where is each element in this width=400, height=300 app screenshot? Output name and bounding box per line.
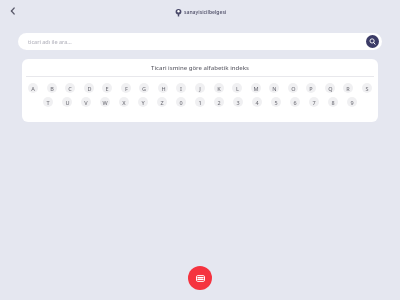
button[interactable]: A (28, 83, 38, 93)
staticText: Y (141, 99, 145, 106)
staticText: C (68, 85, 72, 92)
staticText: 2 (217, 99, 221, 106)
staticText: B (50, 85, 54, 92)
button[interactable]: 4 (252, 97, 262, 107)
button[interactable]: H (158, 83, 168, 93)
staticText: 1 (198, 99, 202, 106)
staticText: E (105, 85, 109, 92)
button[interactable]: D (84, 83, 94, 93)
staticText: M (253, 85, 259, 92)
button[interactable]: C (65, 83, 75, 93)
staticText: S (365, 85, 369, 92)
button[interactable]: 3 (233, 97, 243, 107)
button[interactable]: X (119, 97, 129, 107)
staticText: ticari adı ile ara... (28, 38, 72, 45)
button[interactable]: 0 (176, 97, 186, 107)
staticText: R (346, 85, 350, 92)
staticText: X (122, 99, 126, 106)
button[interactable]: B (47, 83, 57, 93)
button[interactable]: K (214, 83, 224, 93)
staticText: 6 (293, 99, 297, 106)
button[interactable]: U (62, 97, 72, 107)
button[interactable]: 9 (347, 97, 357, 107)
button[interactable]: L (232, 83, 242, 93)
button[interactable]: T (43, 97, 53, 107)
button[interactable]: Z (157, 97, 167, 107)
staticText: sanayisicilbelgesi (184, 9, 227, 16)
staticText: L (236, 85, 239, 92)
staticText: 7 (312, 99, 316, 106)
button[interactable]: R (343, 83, 353, 93)
button[interactable]: Y (138, 97, 148, 107)
button[interactable]: S (362, 83, 372, 93)
button[interactable]: J (195, 83, 205, 93)
button[interactable]: G (139, 83, 149, 93)
button[interactable]: O (288, 83, 298, 93)
staticText: Q (328, 85, 333, 92)
staticText: U (65, 99, 70, 106)
button[interactable]: M (251, 83, 261, 93)
staticText: 3 (236, 99, 240, 106)
staticText: 9 (350, 99, 354, 106)
staticText: Ticari ismine göre alfabetik indeks (22, 64, 378, 72)
button[interactable]: E (102, 83, 112, 93)
button[interactable]: 6 (290, 97, 300, 107)
button[interactable]: Menü (188, 266, 212, 290)
staticText: F (125, 85, 128, 92)
staticText: H (161, 85, 166, 92)
staticText: Z (160, 99, 164, 106)
staticText: V (84, 99, 88, 106)
button[interactable]: 7 (309, 97, 319, 107)
button[interactable]: W (100, 97, 110, 107)
staticText: 8 (331, 99, 335, 106)
staticText: T (46, 99, 50, 106)
staticText: O (291, 85, 296, 92)
button[interactable]: ticari adı ile ara... (18, 33, 382, 50)
button[interactable]: Geri (4, 2, 22, 20)
staticText: 4 (255, 99, 259, 106)
staticText: W (102, 99, 108, 106)
button[interactable]: Q (325, 83, 335, 93)
button[interactable]: N (269, 83, 279, 93)
staticText: J (199, 85, 201, 92)
button[interactable]: Logo (174, 8, 227, 17)
button[interactable]: P (306, 83, 316, 93)
button[interactable]: I (176, 83, 186, 93)
button[interactable]: 2 (214, 97, 224, 107)
button[interactable]: 8 (328, 97, 338, 107)
staticText: A (31, 85, 35, 92)
staticText: N (272, 85, 277, 92)
button[interactable]: V (81, 97, 91, 107)
button[interactable]: Ara (366, 35, 379, 48)
staticText: I (180, 85, 182, 92)
staticText: K (217, 85, 221, 92)
staticText: D (87, 85, 92, 92)
staticText: 0 (179, 99, 183, 106)
staticText: 5 (274, 99, 278, 106)
button[interactable]: 5 (271, 97, 281, 107)
button[interactable]: 1 (195, 97, 205, 107)
staticText: G (142, 85, 146, 92)
staticText: P (309, 85, 313, 92)
button[interactable]: F (121, 83, 131, 93)
